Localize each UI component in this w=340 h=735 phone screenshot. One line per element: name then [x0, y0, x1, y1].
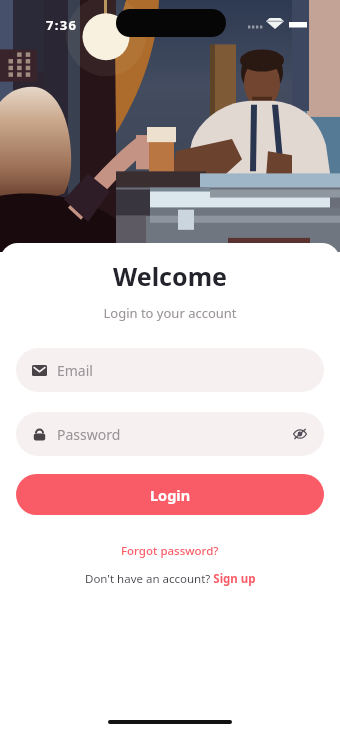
staticText: Login: [150, 485, 191, 505]
staticText: Login to your account: [0, 304, 340, 322]
button[interactable]: Email: [16, 348, 324, 392]
staticText: Welcome: [0, 259, 340, 293]
button[interactable]: Show password: [286, 420, 314, 448]
button[interactable]: Don't have an account? Sign up: [77, 568, 264, 590]
button[interactable]: Forgot password?: [113, 540, 227, 562]
staticText: Email: [57, 361, 93, 380]
staticText: 7:36: [46, 16, 78, 34]
button[interactable]: Login: [16, 474, 324, 515]
staticText: Forgot password?: [121, 543, 219, 559]
staticText: Don't have an account? Sign up: [85, 571, 256, 587]
staticText: Password: [57, 425, 121, 444]
button[interactable]: Password: [16, 412, 324, 456]
